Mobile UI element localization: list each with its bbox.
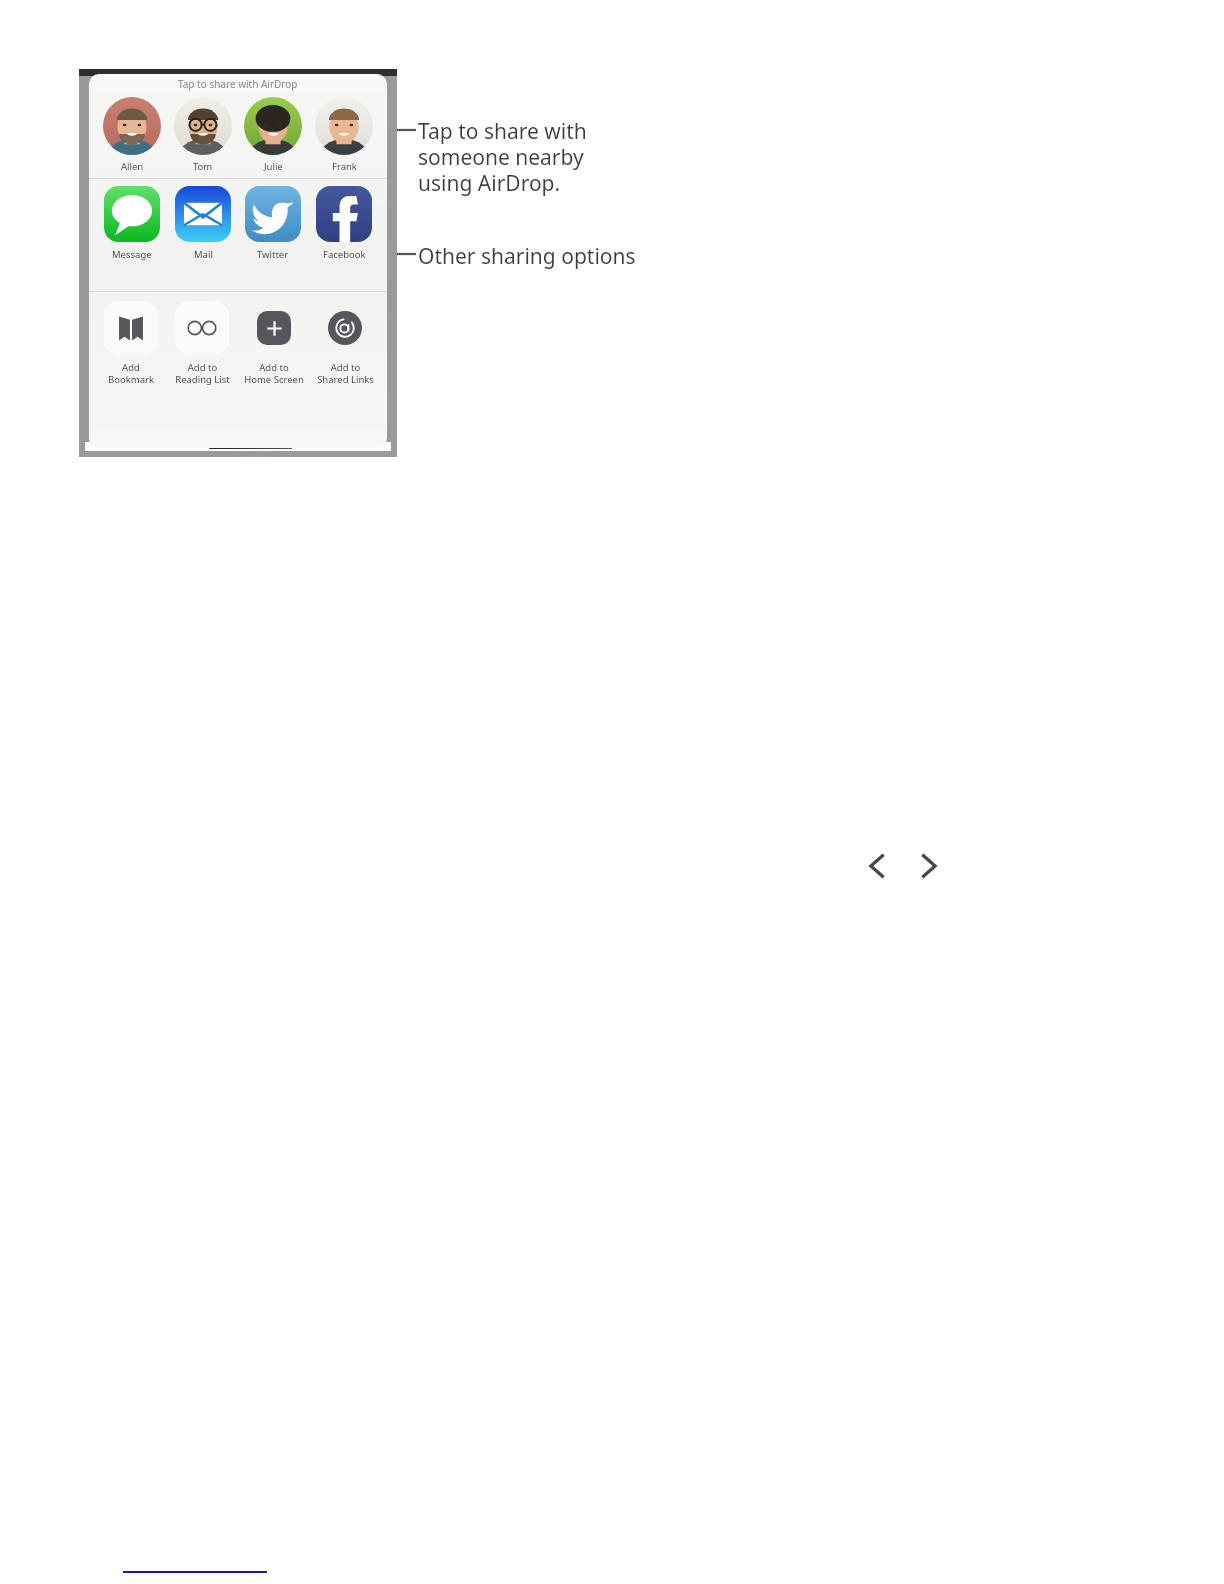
staticText: Facebook	[323, 248, 366, 261]
staticText: Message	[112, 248, 152, 261]
button[interactable]: Mail	[171, 179, 235, 261]
button[interactable]: Frank	[312, 94, 376, 173]
button[interactable]: Add to Home Screen	[240, 301, 308, 386]
button[interactable]: Previous page	[856, 845, 898, 887]
staticText: Julie	[264, 160, 283, 173]
button[interactable]: Add to Reading List	[168, 301, 236, 386]
button[interactable]: Allen	[100, 94, 164, 173]
staticText: Mail	[194, 248, 213, 261]
button[interactable]: Message	[100, 179, 164, 261]
staticText: Add to Home Screen	[244, 361, 304, 386]
staticText: Other sharing options	[418, 242, 636, 271]
staticText: Add to Reading List	[175, 361, 230, 386]
button[interactable]: Next page	[908, 845, 950, 887]
staticText: Frank	[332, 160, 357, 173]
staticText: Tom	[193, 160, 213, 173]
staticText: Add to Shared Links	[317, 361, 374, 386]
staticText: Add Bookmark	[108, 361, 154, 386]
staticText: Tap to share with AirDrop	[178, 77, 298, 91]
button[interactable]: Facebook	[312, 179, 376, 261]
button[interactable]: Add Bookmark	[97, 301, 165, 386]
staticText: Tap to share with someone nearby using A…	[418, 117, 587, 198]
button[interactable]: Julie	[241, 94, 305, 173]
button[interactable]: Add to Shared Links	[311, 301, 379, 386]
button[interactable]	[123, 1556, 267, 1574]
button[interactable]: Tom	[171, 94, 235, 173]
button[interactable]: Twitter	[241, 179, 305, 261]
staticText: Allen	[121, 160, 144, 173]
staticText: Twitter	[257, 248, 289, 261]
